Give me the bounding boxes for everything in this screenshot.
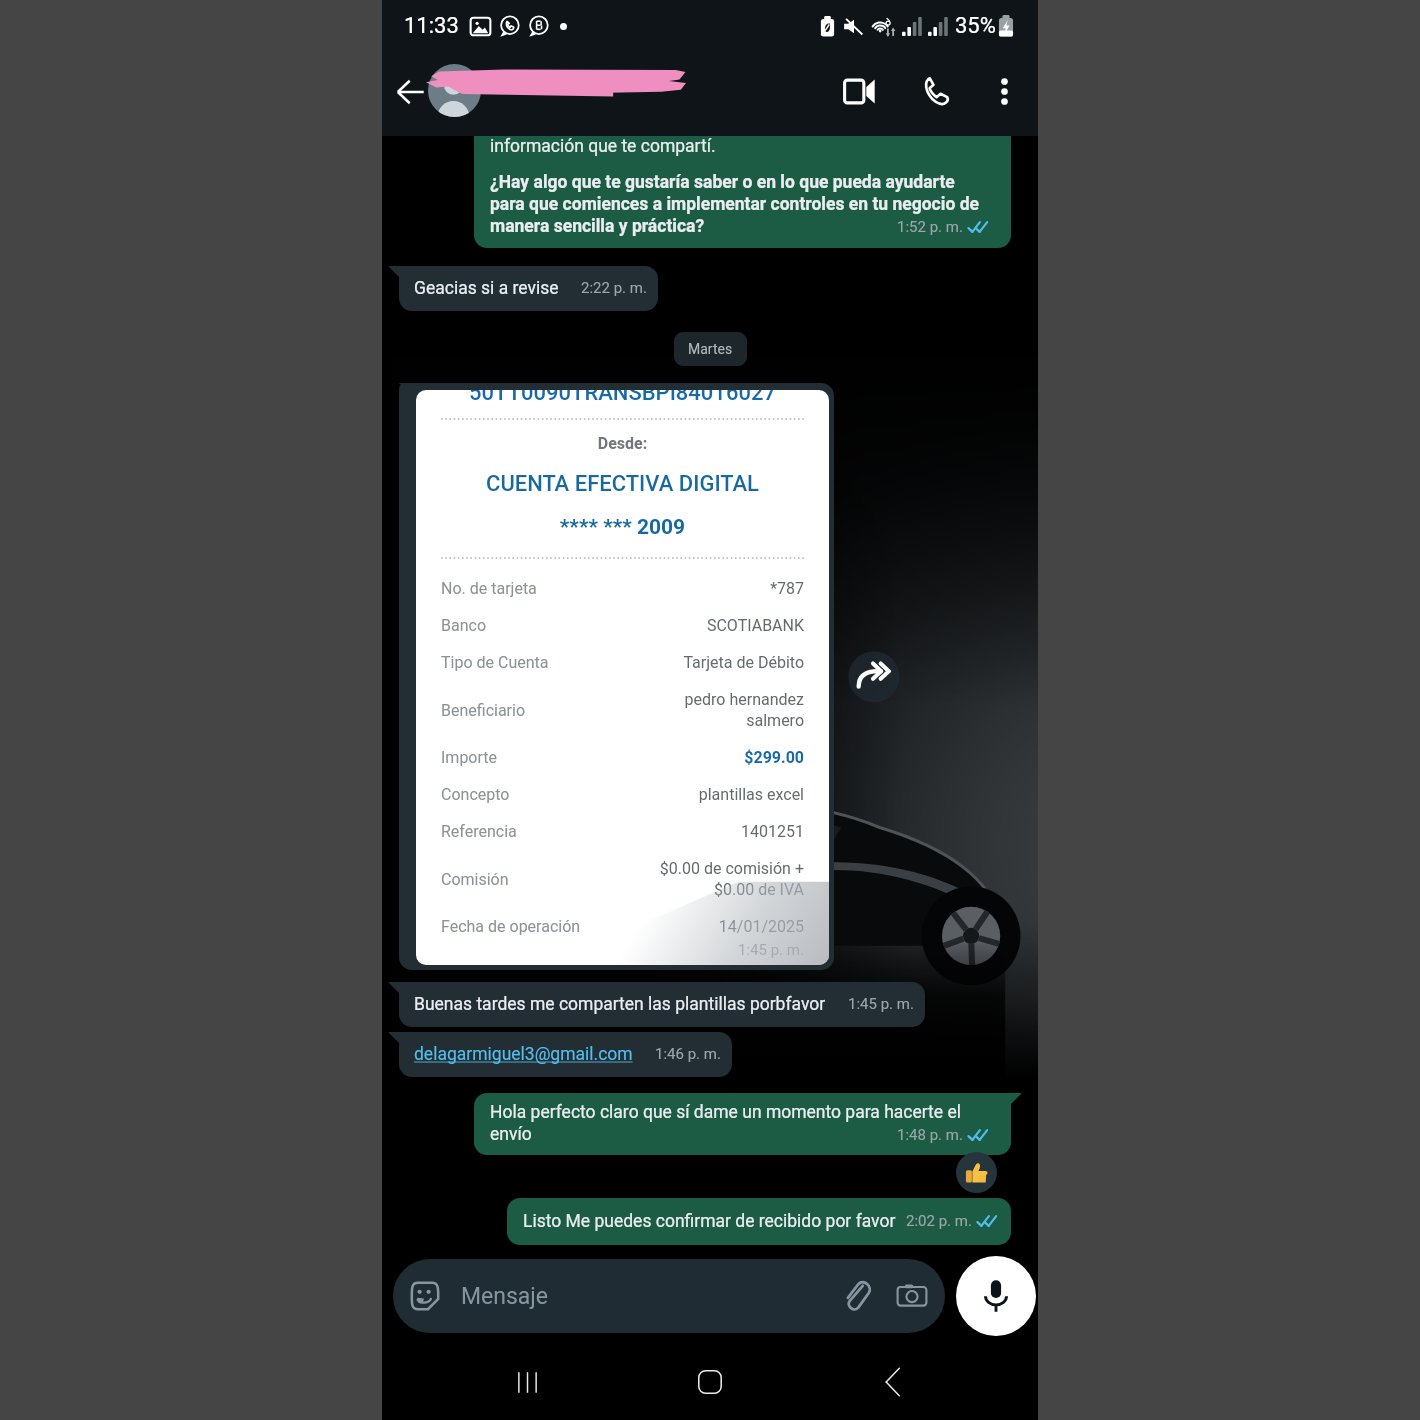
staticText: Hola perfecto claro que sí dame un momen… (490, 1102, 990, 1144)
button[interactable]: Record voice message (956, 1256, 1036, 1336)
button[interactable]: Contact photo (428, 64, 481, 117)
staticText: 50TT0090TRANSBPI84016027 (441, 390, 804, 406)
staticText: CUENTA EFECTIVA DIGITAL (441, 471, 804, 497)
staticText: Desde: (441, 434, 804, 453)
staticText: Comisión (441, 870, 659, 889)
button[interactable]: Thumbs up reaction (956, 1152, 997, 1193)
button[interactable]: Video call (832, 64, 886, 118)
button[interactable]: More options (979, 66, 1029, 116)
button[interactable]: Recent apps (495, 1350, 559, 1414)
staticText: ¿Hay algo que te gustaría saber o en lo … (490, 172, 990, 236)
staticText: 1:45 p. m. (848, 995, 914, 1013)
staticText: Martes (688, 341, 733, 357)
staticText: $0.00 de comisión + $0.00 de IVA (659, 859, 804, 899)
staticText: Buenas tardes me comparten las plantilla… (414, 994, 826, 1015)
staticText: Beneficiario (441, 701, 684, 720)
button[interactable]: 50TT0090TRANSBPI84016027 (399, 383, 834, 970)
staticText: 2:02 p. m. (906, 1212, 972, 1230)
staticText: pedro hernandez salmero (684, 690, 804, 730)
staticText: 1:52 p. m. (897, 218, 963, 236)
staticText: delagarmiguel3@gmail.com (414, 1044, 633, 1065)
staticText: Referencia (441, 822, 741, 841)
staticText: Listo Me puedes confirmar de recibido po… (523, 1211, 896, 1232)
button[interactable]: Forward message (853, 652, 903, 702)
button[interactable]: Listo Me puedes confirmar de recibido po… (507, 1198, 1011, 1245)
staticText: 35% (955, 13, 996, 39)
staticText: 14/01/2025 (718, 917, 804, 936)
button[interactable]: información que te compartí. (474, 136, 1011, 248)
staticText: Concepto (441, 785, 698, 804)
staticText: Mensaje (461, 1283, 549, 1310)
staticText: 1:48 p. m. (897, 1126, 963, 1144)
button[interactable]: Hola perfecto claro que sí dame un momen… (474, 1093, 1011, 1155)
staticText: Banco (441, 616, 706, 635)
staticText: No. de tarjeta (441, 579, 770, 598)
staticText: 1401251 (741, 822, 804, 841)
staticText: Geacias si a revise (414, 278, 559, 299)
staticText: plantillas excel (698, 785, 804, 804)
button[interactable]: Buenas tardes me comparten las plantilla… (399, 982, 925, 1027)
staticText: 1:45 p. m. (738, 941, 804, 959)
staticText: **** *** 2009 (441, 515, 804, 540)
button[interactable]: Voice call (909, 64, 963, 118)
staticText: Tarjeta de Débito (683, 653, 804, 672)
staticText: información que te compartí. (490, 136, 716, 157)
staticText: SCOTIABANK (706, 616, 804, 635)
staticText: 1:46 p. m. (655, 1045, 721, 1063)
staticText: $299.00 (744, 748, 804, 767)
staticText: Fecha de operación (441, 917, 718, 936)
staticText: Tipo de Cuenta (441, 653, 683, 672)
button[interactable]: Martes (674, 332, 747, 366)
button[interactable]: delagarmiguel3@gmail.com (399, 1032, 732, 1077)
staticText: 11:33 (404, 13, 459, 39)
button[interactable]: Geacias si a revise (399, 266, 658, 311)
staticText: *787 (770, 579, 804, 598)
button[interactable]: Back (387, 69, 433, 115)
button[interactable]: Mensaje (393, 1259, 945, 1333)
staticText: Importe (441, 748, 744, 767)
button[interactable]: Back (861, 1350, 925, 1414)
button[interactable]: Home (678, 1350, 742, 1414)
staticText: 2:22 p. m. (581, 279, 647, 297)
